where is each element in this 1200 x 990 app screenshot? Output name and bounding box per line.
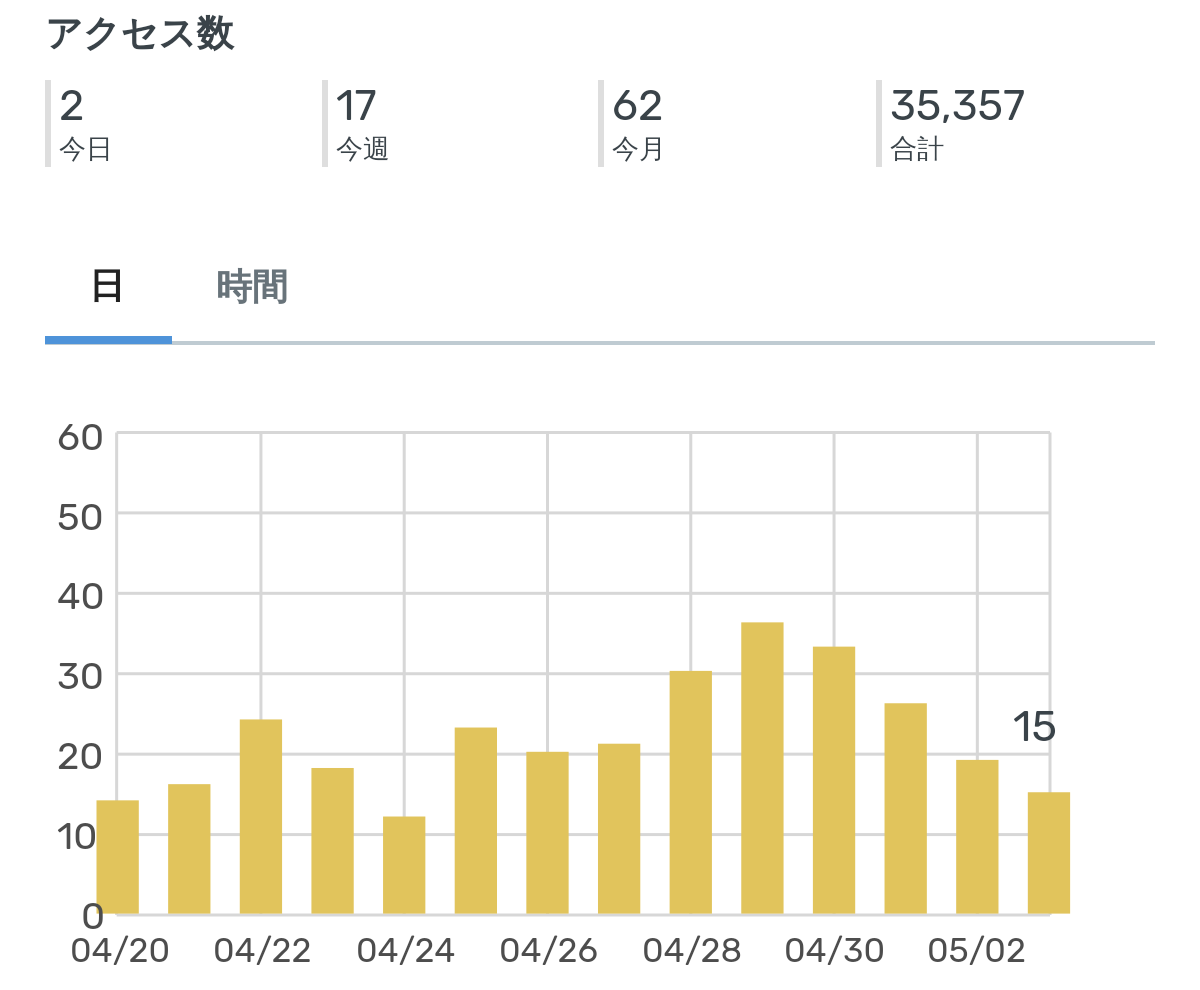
staticText: 04/30 — [784, 930, 886, 970]
staticText: 17 — [336, 80, 377, 131]
staticText: 04/28 — [642, 930, 743, 970]
staticText: 20 — [57, 733, 104, 778]
button[interactable]: 今月62 — [598, 80, 838, 168]
button[interactable]: 今日2 — [45, 80, 285, 168]
staticText: 今週 — [336, 132, 390, 166]
staticText: 今月 — [612, 132, 666, 166]
staticText: 0 — [81, 893, 106, 938]
staticText: 04/26 — [499, 930, 598, 970]
staticText: 62 — [612, 80, 664, 131]
staticText: 30 — [57, 653, 104, 698]
staticText: 15 — [1013, 701, 1057, 752]
button[interactable]: 時間 — [172, 248, 333, 344]
staticText: 50 — [57, 494, 104, 539]
staticText: 04/20 — [70, 930, 171, 970]
button[interactable]: 日 — [45, 248, 172, 344]
staticText: 05/02 — [927, 930, 1026, 970]
staticText: 日 — [89, 263, 125, 308]
staticText: 04/24 — [356, 930, 456, 970]
staticText: 2 — [59, 80, 85, 131]
staticText: 時間 — [216, 264, 288, 309]
staticText: 10 — [57, 813, 98, 858]
button[interactable]: 今週17 — [322, 80, 562, 168]
staticText: 40 — [57, 573, 105, 618]
staticText: 今日 — [59, 132, 113, 166]
staticText: 合計 — [890, 132, 944, 166]
button[interactable]: 合計35,357 — [876, 80, 1116, 168]
staticText: 04/22 — [213, 930, 312, 970]
staticText: アクセス数 — [45, 10, 234, 57]
staticText: 35,357 — [890, 80, 1026, 131]
staticText: 60 — [57, 414, 105, 459]
